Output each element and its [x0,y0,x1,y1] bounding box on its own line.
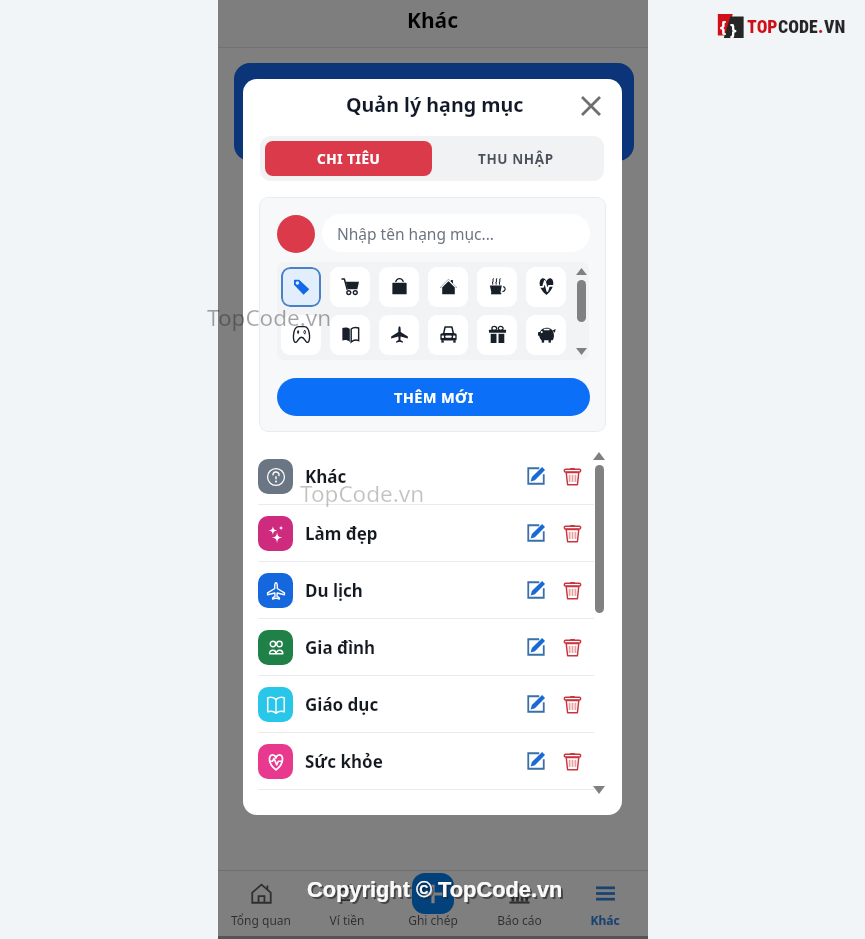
staticText: Báo cáo [497,912,542,928]
staticText: Ghi chép [408,912,458,928]
staticText: VN [824,16,846,37]
staticText: TopCode.vn [207,302,332,333]
button[interactable]: Biểu tượng 12 [526,315,566,355]
button[interactable]: Biểu tượng 10 [428,315,468,355]
button[interactable]: Xóa Du lịch [555,573,589,607]
button[interactable]: Sửa Du lịch [519,573,553,607]
staticText: Khác [590,912,620,928]
button[interactable]: Biểu tượng 3 [379,267,419,307]
staticText: CHI TIÊU [317,150,381,168]
staticText: Copyright © TopCode.vn [309,879,565,903]
staticText: THU NHẬP [478,150,554,168]
staticText: Nhập tên hạng mục... [337,223,494,244]
staticText: Ví tiền [329,912,365,928]
button[interactable]: Sửa Khác [519,459,553,493]
button[interactable]: Tổng quan [218,871,304,936]
button[interactable]: THÊM MỚI [277,378,590,416]
button[interactable]: Báo cáo [476,871,562,936]
button[interactable]: Ghi chép [390,871,476,936]
staticText: Quản lý hạng mục [346,91,524,118]
button[interactable]: Du lịch [258,562,594,618]
button[interactable]: Biểu tượng 4 [428,267,468,307]
button[interactable]: Chọn màu [277,215,315,253]
button[interactable]: THU NHẬP [432,141,599,176]
button[interactable]: Sửa Sức khỏe [519,744,553,778]
staticText: TopCode.vn [300,478,425,509]
button[interactable]: Khác [562,871,648,936]
button[interactable]: Biểu tượng 8 [330,315,370,355]
button[interactable]: Biểu tượng 2 [330,267,370,307]
staticText: Tổng quan [231,912,291,928]
staticText: Khác [407,6,459,35]
button[interactable]: Xóa Gia đình [555,630,589,664]
button[interactable]: Sức khỏe [258,733,594,789]
staticText: Du lịch [305,579,519,602]
staticText: . [818,16,824,37]
button[interactable]: Khác [258,448,594,504]
button[interactable]: Biểu tượng 6 [526,267,566,307]
button[interactable]: Biểu tượng 7 [281,315,321,355]
button[interactable]: Xóa Làm đẹp [555,516,589,550]
button[interactable]: Biểu tượng 1 [281,267,321,307]
button[interactable]: CHI TIÊU [265,141,432,176]
button[interactable]: Nhập tên hạng mục... [322,214,590,252]
button[interactable]: Gia đình [258,619,594,675]
button[interactable]: Sửa Gia đình [519,630,553,664]
button[interactable]: Biểu tượng 9 [379,315,419,355]
staticText: } [730,19,737,41]
staticText: Copyright © TopCode.vn [307,877,563,901]
staticText: Khác [305,465,519,488]
staticText: THÊM MỚI [394,387,474,407]
staticText: { [720,16,727,38]
staticText: CODE [778,16,818,37]
staticText: Sức khỏe [305,750,519,773]
button[interactable]: Ví tiền [304,871,390,936]
button[interactable]: Biểu tượng 5 [477,267,517,307]
button[interactable]: Sửa Giáo dục [519,687,553,721]
button[interactable]: Đóng [576,91,606,121]
button[interactable]: Xóa Sức khỏe [555,744,589,778]
staticText: TOP [747,16,778,37]
button[interactable]: Sửa Làm đẹp [519,516,553,550]
button[interactable]: Xóa Giáo dục [555,687,589,721]
staticText: Giáo dục [305,693,519,716]
button[interactable]: Xóa Khác [555,459,589,493]
button[interactable]: Làm đẹp [258,505,594,561]
button[interactable]: Biểu tượng 11 [477,315,517,355]
button[interactable]: Giáo dục [258,676,594,732]
staticText: Làm đẹp [305,522,519,545]
staticText: Gia đình [305,636,519,659]
